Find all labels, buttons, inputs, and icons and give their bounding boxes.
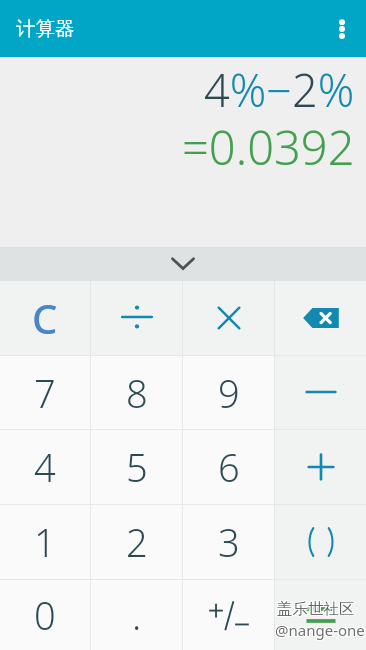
button[interactable]: Plus minus	[183, 580, 274, 650]
staticText: 5	[126, 441, 148, 493]
staticText: @nange-one	[275, 620, 365, 640]
staticText: 盖乐世社区	[276, 600, 354, 620]
staticText: 4	[34, 441, 56, 493]
staticText: @nange-one	[276, 621, 366, 641]
button[interactable]: .	[91, 580, 182, 650]
button[interactable]: More options	[318, 5, 366, 53]
staticText: @nange-one	[274, 620, 364, 640]
staticText: @nange-one	[274, 619, 364, 639]
staticText: 4%−2%	[204, 59, 355, 120]
staticText: @nange-one	[275, 619, 365, 639]
button[interactable]: Parentheses	[275, 505, 366, 579]
button[interactable]: 5	[91, 430, 182, 504]
button[interactable]: 9	[183, 356, 274, 429]
button[interactable]: 6	[183, 430, 274, 504]
staticText: 3	[218, 516, 240, 568]
staticText: 8	[126, 367, 148, 419]
button[interactable]: Plus	[275, 430, 366, 504]
button[interactable]: 4	[0, 430, 90, 504]
staticText: 6	[218, 441, 240, 493]
staticText: @nange-one	[274, 621, 364, 641]
staticText: 盖乐世社区	[278, 598, 356, 618]
staticText: 盖乐世社区	[277, 598, 355, 618]
staticText: 盖乐世社区	[278, 600, 356, 620]
staticText: 盖乐世社区	[277, 599, 355, 619]
button[interactable]: C	[0, 281, 90, 355]
button[interactable]: Collapse keypad	[0, 247, 366, 281]
button[interactable]: Divide	[91, 281, 182, 355]
staticText: @nange-one	[275, 621, 365, 641]
button[interactable]: Minus	[275, 356, 366, 429]
button[interactable]: 1	[0, 505, 90, 579]
staticText: 1	[34, 516, 56, 568]
staticText: @nange-one	[276, 620, 366, 640]
staticText: 7	[34, 367, 56, 419]
staticText: @nange-one	[276, 619, 366, 639]
button[interactable]: 0	[0, 580, 90, 650]
staticText: 盖乐世社区	[276, 598, 354, 618]
button[interactable]: 3	[183, 505, 274, 579]
staticText: 0	[34, 589, 56, 641]
staticText: 9	[218, 367, 240, 419]
staticText: 盖乐世社区	[276, 599, 354, 619]
staticText: C	[32, 291, 58, 345]
staticText: 盖乐世社区	[277, 600, 355, 620]
button[interactable]: 8	[91, 356, 182, 429]
staticText: .	[132, 589, 142, 641]
staticText: =0.0392	[182, 115, 355, 179]
button[interactable]: 2	[91, 505, 182, 579]
staticText: 计算器	[16, 16, 75, 41]
button[interactable]	[275, 580, 366, 650]
button[interactable]: Backspace	[275, 281, 366, 355]
button[interactable]: Multiply	[183, 281, 274, 355]
staticText: 2	[126, 516, 148, 568]
button[interactable]: 7	[0, 356, 90, 429]
staticText: 盖乐世社区	[278, 599, 356, 619]
